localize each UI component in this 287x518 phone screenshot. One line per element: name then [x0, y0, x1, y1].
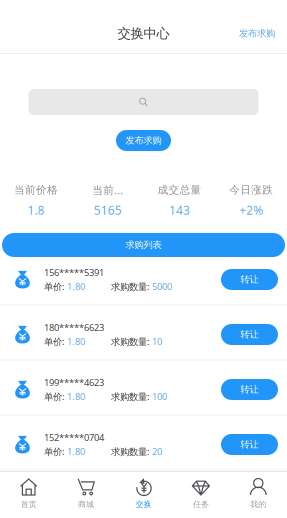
- staticText: 转让: [240, 439, 258, 450]
- button[interactable]: 交换: [115, 471, 172, 518]
- staticText: 首页: [21, 499, 37, 509]
- staticText: 5165: [94, 202, 122, 218]
- button[interactable]: 发布求购: [116, 130, 171, 151]
- button[interactable]: 转让: [221, 434, 278, 455]
- staticText: 我的: [250, 499, 266, 509]
- staticText: 求购列表: [125, 239, 161, 251]
- staticText: 发布求购: [239, 28, 275, 39]
- staticText: 1.8: [27, 202, 44, 218]
- staticText: 199*****4623: [44, 376, 104, 389]
- staticText: 单价:: [44, 335, 67, 348]
- staticText: 20: [152, 445, 162, 458]
- staticText: 交换中心: [117, 25, 169, 42]
- staticText: 求购数量:: [111, 445, 152, 458]
- staticText: 单价:: [44, 445, 67, 458]
- button[interactable]: 转让: [221, 379, 278, 400]
- staticText: 转让: [240, 274, 258, 285]
- staticText: 单价:: [44, 390, 67, 403]
- staticText: +2%: [239, 202, 263, 218]
- staticText: 1.80: [67, 280, 85, 293]
- staticText: 1.80: [67, 445, 85, 458]
- staticText: 发布求购: [125, 135, 161, 146]
- staticText: 180*****6623: [44, 321, 104, 334]
- staticText: 5000: [152, 280, 172, 293]
- button[interactable]: 发布求购: [239, 20, 287, 47]
- staticText: 交换: [135, 499, 151, 509]
- staticText: 单价:: [44, 280, 67, 293]
- staticText: 当前...: [92, 183, 123, 197]
- staticText: 143: [169, 202, 190, 218]
- button[interactable]: 转让: [221, 269, 278, 290]
- staticText: 1.80: [67, 390, 85, 403]
- staticText: 100: [152, 390, 167, 403]
- staticText: 转让: [240, 329, 258, 340]
- staticText: 10: [152, 335, 162, 348]
- staticText: 商城: [78, 499, 94, 509]
- button[interactable]: 转让: [221, 324, 278, 345]
- staticText: 求购数量:: [111, 390, 152, 403]
- staticText: 求购数量:: [111, 335, 152, 348]
- staticText: 156*****5391: [44, 266, 104, 279]
- button[interactable]: 我的: [230, 471, 287, 518]
- staticText: 求购数量:: [111, 280, 152, 293]
- staticText: 1.80: [67, 335, 85, 348]
- staticText: 任务: [193, 499, 209, 509]
- button[interactable]: 商城: [57, 471, 115, 518]
- button[interactable]: 首页: [0, 471, 57, 518]
- staticText: 152*****0704: [44, 431, 104, 444]
- staticText: 当前价格: [14, 183, 58, 196]
- staticText: 成交总量: [157, 183, 201, 196]
- staticText: 转让: [240, 384, 258, 395]
- button[interactable]: 搜索: [28, 89, 258, 115]
- button[interactable]: 任务: [172, 471, 230, 518]
- staticText: 今日涨跌: [229, 183, 273, 196]
